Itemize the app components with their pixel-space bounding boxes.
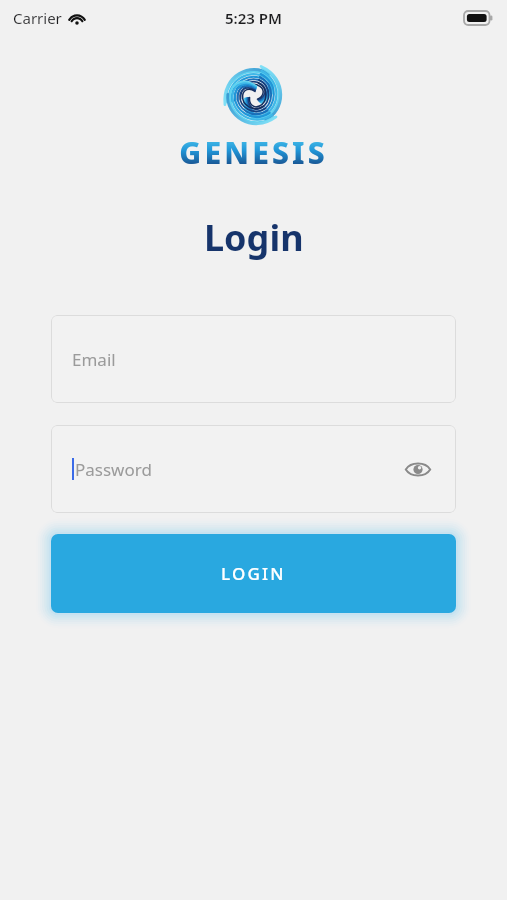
staticText: Login — [204, 213, 304, 262]
staticText: Email — [72, 348, 116, 371]
button[interactable]: LOGIN — [51, 534, 456, 613]
staticText: LOGIN — [221, 562, 286, 585]
button[interactable]: Show password — [401, 452, 435, 486]
button[interactable]: Password — [51, 425, 456, 513]
staticText: 5:23 PM — [225, 8, 282, 28]
staticText: GENESIS — [179, 132, 328, 173]
button[interactable]: Email — [51, 315, 456, 403]
staticText: Carrier — [13, 8, 62, 28]
staticText: Password — [75, 458, 152, 481]
